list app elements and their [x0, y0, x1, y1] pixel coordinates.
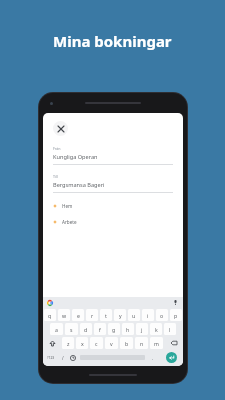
button[interactable]: Retur [166, 352, 177, 363]
staticText: k [155, 326, 158, 333]
button[interactable]: j [136, 323, 148, 335]
button[interactable]: s [65, 323, 78, 335]
staticText: f [99, 326, 101, 333]
button[interactable]: k [150, 323, 162, 335]
button[interactable]: a [50, 323, 63, 335]
staticText: d [84, 326, 88, 333]
button[interactable]: i [142, 309, 154, 321]
button[interactable]: Arbete [53, 219, 173, 225]
staticText: g [112, 326, 116, 333]
button[interactable]: / [58, 351, 67, 364]
button[interactable]: c [90, 337, 103, 349]
staticText: s [70, 326, 73, 333]
staticText: p [174, 312, 178, 319]
button[interactable]: y [114, 309, 126, 321]
staticText: l [169, 326, 171, 333]
button[interactable]: w [58, 309, 70, 321]
staticText: Hem [62, 203, 73, 209]
staticText: . [152, 355, 154, 361]
staticText: Till [53, 174, 58, 179]
button[interactable]: h [122, 323, 134, 335]
staticText: Från [53, 146, 61, 151]
staticText: Arbete [62, 219, 77, 225]
button[interactable]: . [147, 351, 159, 364]
button[interactable]: ?123 [43, 351, 58, 364]
staticText: x [81, 340, 84, 347]
button[interactable]: Stäng [53, 121, 68, 136]
staticText: Bergsmansa Bageri [53, 181, 105, 189]
button[interactable]: n [135, 337, 148, 349]
staticText: j [141, 326, 143, 333]
staticText: m [154, 340, 159, 347]
button[interactable]: p [170, 309, 182, 321]
staticText: c [95, 340, 98, 347]
staticText: i [147, 312, 149, 319]
button[interactable]: q [44, 309, 56, 321]
button[interactable]: Emoji [67, 351, 78, 364]
staticText: y [119, 312, 122, 319]
staticText: h [126, 326, 130, 333]
button[interactable]: v [105, 337, 118, 349]
button[interactable]: o [156, 309, 168, 321]
staticText: v [110, 340, 113, 347]
button[interactable]: e [72, 309, 84, 321]
staticText: r [91, 312, 94, 319]
staticText: n [140, 340, 144, 347]
staticText: w [62, 312, 67, 319]
staticText: a [55, 326, 58, 333]
button[interactable]: Skift [44, 337, 60, 349]
button[interactable]: z [62, 337, 74, 349]
button[interactable]: r [86, 309, 98, 321]
staticText: t [105, 312, 107, 319]
button[interactable]: Från [53, 146, 173, 165]
button[interactable]: Radera [165, 337, 182, 349]
staticText: Kungliga Operan [53, 153, 98, 161]
button[interactable]: Google [47, 300, 53, 306]
button[interactable]: d [80, 323, 92, 335]
staticText: / [62, 355, 64, 361]
button[interactable]: Hem [53, 203, 173, 209]
button[interactable]: Röstinmatning [172, 299, 179, 306]
staticText: e [77, 312, 80, 319]
staticText: b [125, 340, 129, 347]
staticText: z [67, 340, 70, 347]
button[interactable]: t [100, 309, 112, 321]
button[interactable]: b [120, 337, 133, 349]
button[interactable]: m [150, 337, 163, 349]
button[interactable]: l [164, 323, 176, 335]
staticText: ?123 [47, 355, 55, 360]
button[interactable]: Till [53, 174, 173, 193]
button[interactable]: f [94, 323, 106, 335]
button[interactable]: g [108, 323, 120, 335]
button[interactable]: x [76, 337, 88, 349]
staticText: u [132, 312, 136, 319]
staticText: q [48, 312, 52, 319]
staticText: Mina bokningar [53, 31, 172, 51]
button[interactable]: u [128, 309, 140, 321]
staticText: o [160, 312, 164, 319]
